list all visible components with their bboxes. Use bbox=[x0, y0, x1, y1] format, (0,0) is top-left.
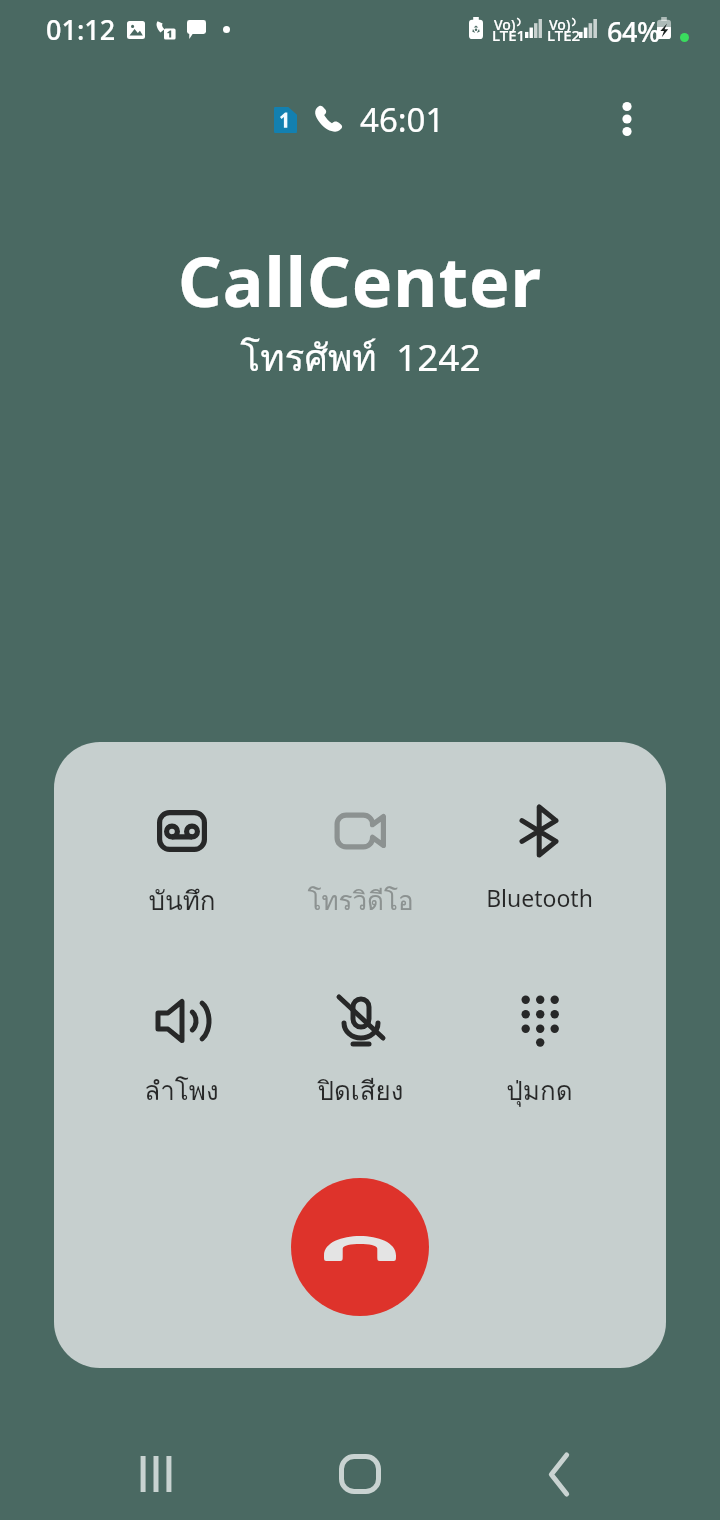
button[interactable]: โทรวิดีโอ bbox=[271, 803, 450, 928]
staticText: โทรศัพท์ 1242 bbox=[240, 328, 481, 387]
button[interactable]: Recents bbox=[96, 1434, 216, 1514]
staticText: บันทึก bbox=[148, 880, 216, 921]
button[interactable]: Bluetooth bbox=[450, 803, 629, 928]
button[interactable]: Back bbox=[499, 1434, 619, 1514]
button[interactable]: บันทึก bbox=[92, 803, 271, 928]
staticText: Vo) bbox=[494, 15, 516, 34]
button[interactable]: ปิดเสียง bbox=[271, 993, 450, 1118]
staticText: ปุ่มกด bbox=[506, 1070, 573, 1111]
staticText: CallCenter bbox=[178, 234, 542, 327]
staticText: 64% bbox=[607, 13, 660, 50]
button[interactable]: More options bbox=[603, 95, 651, 143]
staticText: ลำโพง bbox=[144, 1070, 219, 1111]
staticText: ปิดเสียง bbox=[317, 1070, 404, 1111]
staticText: Bluetooth bbox=[486, 882, 593, 913]
button[interactable]: Home bbox=[298, 1434, 422, 1514]
staticText: LTE2 bbox=[547, 25, 580, 45]
staticText: Vo) bbox=[549, 15, 571, 34]
staticText: LTE1 bbox=[492, 25, 525, 45]
staticText: 46:01 bbox=[360, 97, 445, 142]
button[interactable]: ปุ่มกด bbox=[450, 993, 629, 1118]
staticText: โทรวิดีโอ bbox=[307, 880, 414, 921]
button[interactable]: ลำโพง bbox=[92, 993, 271, 1118]
staticText: 01:12 bbox=[46, 11, 116, 48]
button[interactable]: End call bbox=[291, 1178, 429, 1316]
